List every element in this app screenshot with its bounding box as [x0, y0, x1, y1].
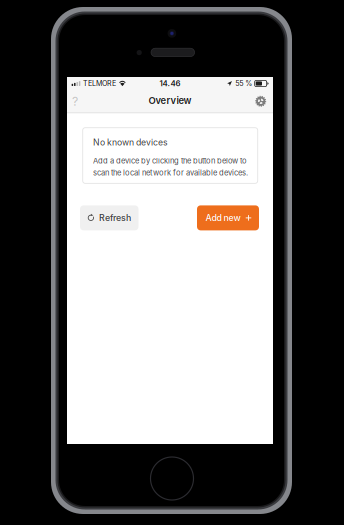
staticText: Add new	[205, 213, 240, 223]
staticText: ?	[72, 94, 78, 109]
staticText: Overview	[148, 95, 191, 106]
staticText: 55 %	[235, 79, 252, 88]
button[interactable]: Add new	[197, 205, 259, 230]
button[interactable]: Settings	[253, 91, 273, 112]
staticText: scan the local network for available dev…	[93, 168, 248, 177]
staticText: No known devices	[93, 137, 168, 148]
staticText: Add a device by clicking the button belo…	[93, 156, 247, 165]
staticText: 14.46	[159, 79, 180, 88]
button[interactable]: ?	[67, 91, 86, 112]
button[interactable]: Refresh	[80, 205, 138, 230]
staticText: Refresh	[99, 213, 131, 223]
staticText: TELMORE	[83, 79, 116, 88]
